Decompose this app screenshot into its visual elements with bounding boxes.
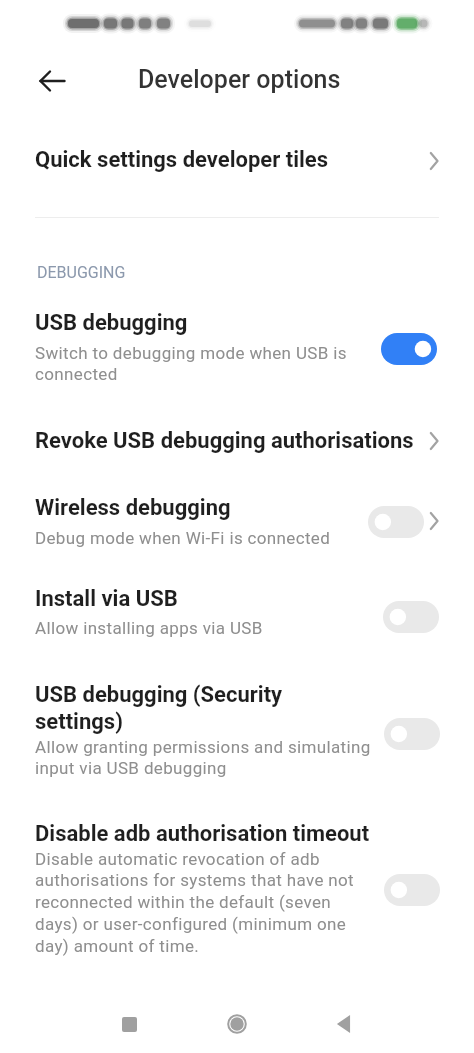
button[interactable] [215, 1002, 259, 1046]
staticText: Install via USB [35, 586, 178, 612]
staticText: Disable automatic revocation of adb auth… [35, 849, 355, 957]
button[interactable]: Revoke USB debugging authorisations [0, 413, 474, 471]
button[interactable] [107, 1002, 151, 1046]
button[interactable] [323, 1002, 367, 1046]
staticText: USB debugging [35, 310, 188, 336]
button[interactable] [381, 333, 437, 365]
button[interactable]: Wireless debugging [0, 482, 474, 550]
button[interactable]: Disable adb authorisation timeout [0, 808, 474, 968]
button[interactable]: USB debugging (Security settings) [0, 668, 474, 788]
staticText: Developer options [138, 65, 341, 94]
button[interactable] [30, 59, 74, 103]
button[interactable] [383, 601, 439, 633]
button[interactable] [368, 506, 424, 538]
staticText: Switch to debugging mode when USB is con… [35, 343, 347, 384]
button[interactable]: Install via USB [0, 574, 474, 644]
staticText: Quick settings developer tiles [35, 147, 329, 173]
staticText: USB debugging (Security settings) [35, 682, 283, 734]
staticText: Allow granting permissions and simulatin… [35, 737, 371, 779]
button[interactable]: Quick settings developer tiles [0, 128, 474, 193]
staticText: Wireless debugging [35, 495, 231, 521]
button[interactable] [384, 874, 440, 906]
staticText: Debug mode when Wi-Fi is connected [35, 528, 331, 548]
staticText: DEBUGGING [37, 263, 126, 282]
staticText: Disable adb authorisation timeout [35, 821, 370, 847]
staticText: Allow installing apps via USB [35, 618, 263, 638]
button[interactable] [384, 718, 440, 750]
button[interactable]: USB debugging [0, 296, 474, 399]
staticText: Revoke USB debugging authorisations [35, 428, 414, 454]
